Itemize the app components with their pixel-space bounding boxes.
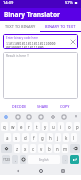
staticText: 1101100101101101101110000: [6, 41, 56, 45]
staticText: p: [76, 124, 79, 130]
staticText: o: [68, 124, 71, 130]
staticText: b: [48, 146, 51, 152]
button[interactable]: Stickers: [14, 113, 21, 120]
button[interactable]: SHARE: [35, 103, 51, 110]
button[interactable]: Space: [28, 155, 60, 164]
button[interactable]: GIF: [25, 113, 32, 120]
button[interactable]: Back: [14, 167, 22, 175]
button[interactable]: v: [38, 144, 44, 153]
button[interactable]: .: [62, 155, 68, 164]
staticText: j: [57, 135, 59, 141]
staticText: q: [3, 124, 6, 130]
staticText: z: [16, 146, 19, 152]
button[interactable]: z: [14, 144, 20, 153]
button[interactable]: m: [62, 144, 68, 153]
button[interactable]: k: [63, 133, 69, 142]
button[interactable]: Enter: [70, 155, 79, 164]
button[interactable]: Home: [37, 167, 45, 175]
staticText: a: [6, 135, 9, 141]
staticText: v: [40, 146, 43, 152]
button[interactable]: Google search: [2, 113, 9, 120]
staticText: Enter binary code here: [6, 36, 39, 40]
staticText: r: [28, 124, 30, 130]
staticText: c: [32, 146, 35, 152]
staticText: i: [60, 124, 62, 130]
staticText: English: [39, 158, 49, 162]
button[interactable]: Voice input: [72, 113, 79, 120]
button[interactable]: i: [58, 122, 64, 131]
button[interactable]: Theme: [60, 113, 67, 120]
button[interactable]: f: [31, 133, 37, 142]
button[interactable]: q: [1, 122, 8, 131]
staticText: 0010000110110111000: [6, 45, 44, 49]
staticText: h: [49, 135, 52, 141]
button[interactable]: r: [26, 122, 32, 131]
button[interactable]: e: [18, 122, 24, 131]
button[interactable]: COPY: [58, 103, 72, 110]
button[interactable]: g: [39, 133, 45, 142]
button[interactable]: BINARY TO TEXT: [40, 21, 81, 31]
staticText: Binary Translator: [4, 10, 60, 19]
button[interactable]: y: [42, 122, 48, 131]
button[interactable]: Shift: [1, 144, 12, 153]
button[interactable]: j: [55, 133, 61, 142]
staticText: g: [41, 135, 44, 141]
button[interactable]: Enter binary code here: [3, 34, 78, 49]
staticText: f: [33, 135, 35, 141]
button[interactable]: Clipboard: [37, 113, 44, 120]
staticText: x: [24, 146, 27, 152]
staticText: m: [63, 146, 68, 152]
button[interactable]: ?123: [2, 155, 10, 164]
staticText: COPY: [60, 104, 70, 109]
button[interactable]: h: [47, 133, 53, 142]
button[interactable]: t: [34, 122, 40, 131]
button[interactable]: s: [13, 133, 20, 142]
button[interactable]: Backspace: [70, 144, 80, 153]
button[interactable]: Settings: [49, 113, 56, 120]
button[interactable]: u: [50, 122, 56, 131]
button[interactable]: x: [22, 144, 28, 153]
button[interactable]: DECODE: [10, 103, 29, 110]
staticText: BINARY TO TEXT: [45, 24, 76, 29]
button[interactable]: ,: [12, 155, 18, 164]
staticText: s: [15, 135, 18, 141]
button[interactable]: c: [30, 144, 36, 153]
button[interactable]: b: [46, 144, 52, 153]
staticText: SHARE: [37, 104, 49, 109]
staticText: n: [56, 146, 59, 152]
staticText: 57%: [65, 0, 73, 5]
button[interactable]: Clear text: [69, 38, 76, 45]
staticText: .: [65, 158, 66, 162]
button[interactable]: o: [66, 122, 72, 131]
staticText: ?123: [3, 158, 10, 162]
staticText: ,: [15, 158, 16, 162]
button[interactable]: w: [10, 122, 16, 131]
staticText: w: [11, 124, 15, 130]
staticText: e: [20, 124, 23, 130]
button[interactable]: p: [74, 122, 80, 131]
button[interactable]: Emoji: [20, 155, 26, 164]
button[interactable]: Result is here !!: [3, 52, 78, 99]
staticText: y: [44, 124, 47, 130]
staticText: Result is here !!: [6, 54, 29, 58]
button[interactable]: d: [22, 133, 29, 142]
button[interactable]: TEXT TO BINARY: [0, 21, 40, 31]
staticText: 14:09: [3, 0, 14, 5]
staticText: t: [36, 124, 38, 130]
button[interactable]: l: [71, 133, 77, 142]
button[interactable]: n: [54, 144, 60, 153]
staticText: d: [24, 135, 27, 141]
staticText: k: [65, 135, 68, 141]
button[interactable]: Recents: [59, 167, 67, 175]
staticText: TEXT TO BINARY: [5, 24, 36, 29]
staticText: l: [73, 135, 75, 141]
staticText: u: [52, 124, 55, 130]
button[interactable]: a: [4, 133, 11, 142]
staticText: DECODE: [12, 104, 27, 109]
